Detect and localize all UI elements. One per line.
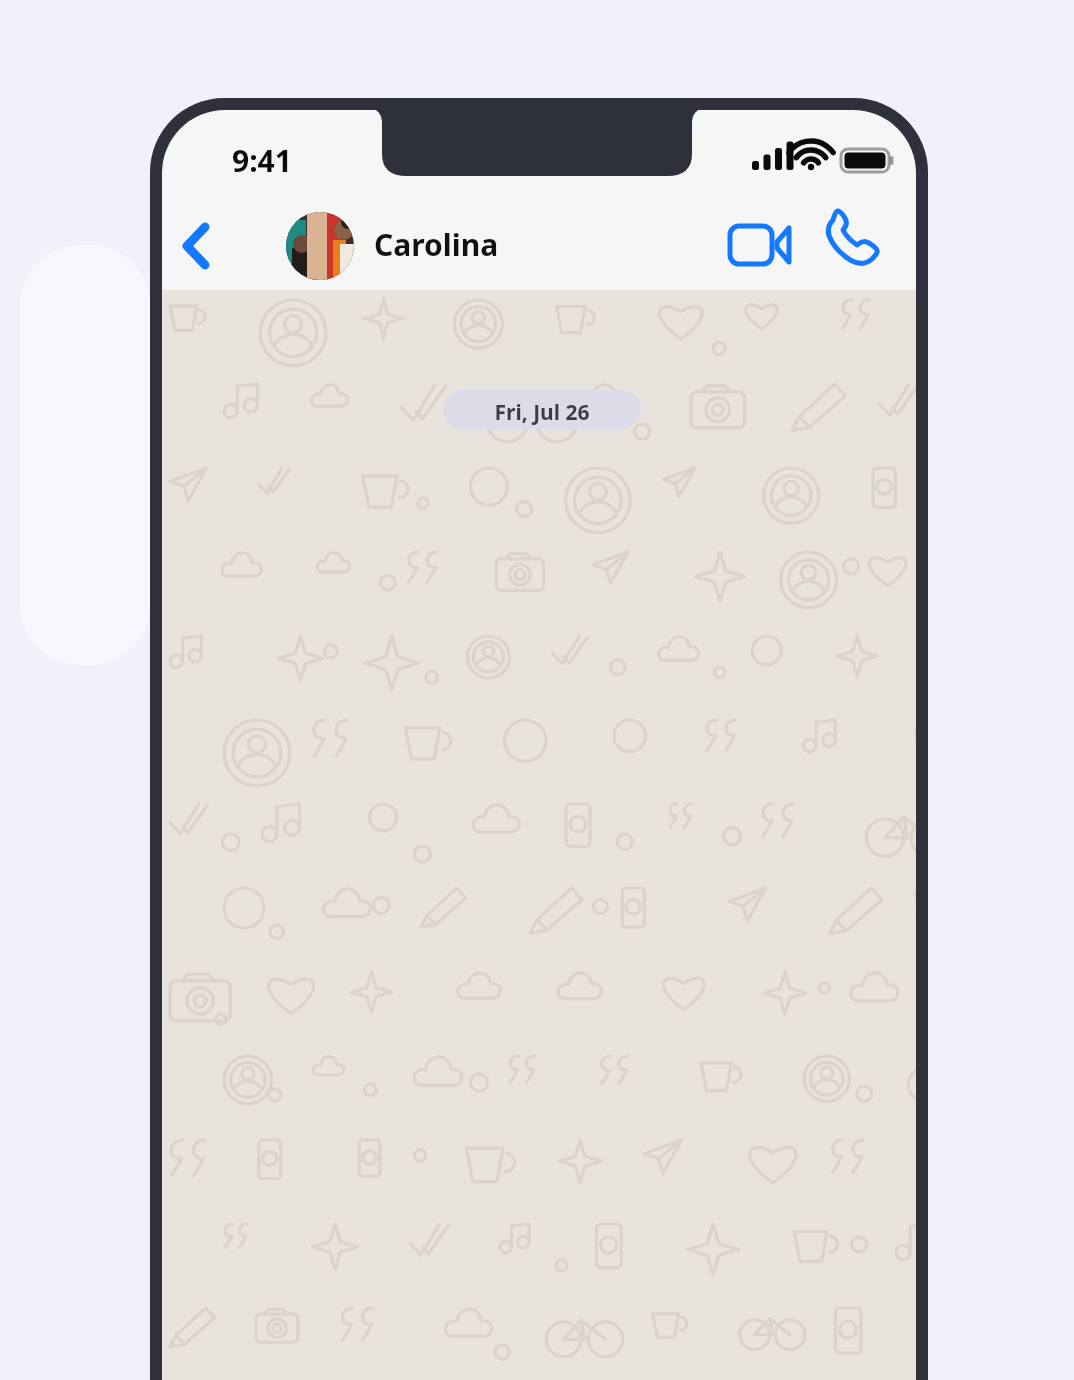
button[interactable]: Video call [722,208,800,284]
button[interactable]: Voice call [818,208,896,284]
staticText: 9:41 [232,140,292,181]
staticText: Carolina [374,224,499,265]
button[interactable]: Fri, Jul 26 [443,390,641,429]
staticText: Fri, Jul 26 [443,398,641,437]
button[interactable]: Back [166,213,230,277]
button[interactable] [276,208,512,284]
